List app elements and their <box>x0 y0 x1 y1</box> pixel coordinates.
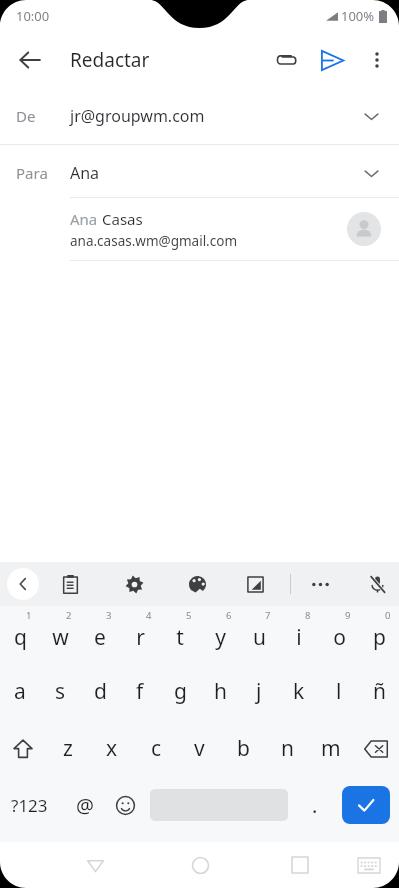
button[interactable]: n <box>265 720 309 777</box>
button[interactable]: Home <box>180 845 220 885</box>
button[interactable]: g <box>160 663 200 720</box>
button[interactable]: z <box>46 720 90 777</box>
staticText: 1 <box>26 609 32 622</box>
staticText: n <box>281 734 294 763</box>
staticText: p <box>373 623 386 652</box>
button[interactable]: Recent apps <box>280 845 320 885</box>
staticText: l <box>336 677 342 706</box>
button[interactable]: Settings <box>116 566 152 602</box>
staticText: Casas <box>102 209 143 229</box>
button[interactable]: Themes <box>179 566 215 602</box>
button[interactable]: h <box>200 663 240 720</box>
button[interactable]: 7 <box>239 606 279 663</box>
staticText: De <box>16 106 36 126</box>
button[interactable]: 0 <box>359 606 399 663</box>
staticText: c <box>151 734 162 763</box>
button[interactable]: Attach file <box>263 37 309 83</box>
staticText: w <box>52 623 69 652</box>
button[interactable]: More <box>302 566 338 602</box>
button[interactable]: f <box>120 663 160 720</box>
button[interactable]: Keyboard <box>349 845 389 885</box>
staticText: x <box>106 734 118 763</box>
staticText: s <box>55 677 66 706</box>
button[interactable]: 6 <box>200 606 240 663</box>
button[interactable]: j <box>239 663 279 720</box>
button[interactable]: c <box>134 720 178 777</box>
staticText: jr@groupwm.com <box>70 105 205 127</box>
button[interactable]: a <box>0 663 40 720</box>
button[interactable]: 8 <box>279 606 319 663</box>
staticText: u <box>253 623 266 652</box>
staticText: h <box>214 677 227 706</box>
button[interactable]: More options <box>355 38 399 82</box>
button[interactable]: 9 <box>319 606 359 663</box>
staticText: o <box>333 623 346 652</box>
button[interactable]: Emoji <box>104 777 146 834</box>
button[interactable]: v <box>177 720 221 777</box>
button[interactable]: Back <box>6 36 54 84</box>
staticText: 5 <box>186 609 192 622</box>
staticText: z <box>63 734 73 763</box>
button[interactable]: 1 <box>0 606 40 663</box>
button[interactable]: ñ <box>359 663 399 720</box>
button[interactable]: d <box>80 663 120 720</box>
staticText: Ana <box>70 209 102 229</box>
staticText: 100% <box>341 7 375 25</box>
staticText: j <box>256 677 262 706</box>
staticText: 9 <box>345 609 351 622</box>
button[interactable]: Shift <box>0 720 46 777</box>
staticText: ana.casas.wm@gmail.com <box>70 232 238 250</box>
staticText: Redactar <box>70 47 150 73</box>
staticText: m <box>321 734 341 763</box>
button[interactable]: Expand toolbar <box>7 568 39 600</box>
button[interactable]: s <box>40 663 80 720</box>
button[interactable]: 2 <box>40 606 80 663</box>
staticText: a <box>14 677 26 706</box>
staticText: d <box>94 677 107 706</box>
button[interactable]: Send <box>309 37 355 83</box>
staticText: ñ <box>373 677 386 706</box>
button[interactable]: m <box>309 720 353 777</box>
staticText: y <box>215 623 226 652</box>
button[interactable]: . <box>295 777 335 834</box>
button[interactable]: b <box>221 720 265 777</box>
button[interactable]: Microphone off <box>359 566 395 602</box>
staticText: Ana <box>70 162 100 184</box>
button[interactable]: Clipboard <box>52 566 88 602</box>
button[interactable]: Backspace <box>353 720 399 777</box>
button[interactable]: Enter <box>342 786 390 824</box>
staticText: t <box>176 623 184 652</box>
button[interactable]: ?123 <box>0 777 58 834</box>
staticText: f <box>136 677 144 706</box>
button[interactable]: x <box>90 720 134 777</box>
button[interactable]: De <box>0 88 399 144</box>
staticText: Para <box>16 163 48 183</box>
button[interactable]: Back <box>75 845 115 885</box>
button[interactable]: k <box>279 663 319 720</box>
staticText: 0 <box>385 609 391 622</box>
button[interactable]: @ <box>62 777 108 834</box>
button[interactable]: 3 <box>80 606 120 663</box>
staticText: b <box>237 734 250 763</box>
staticText: e <box>94 623 106 652</box>
staticText: 4 <box>146 609 152 622</box>
staticText: k <box>293 677 305 706</box>
staticText: i <box>296 623 302 652</box>
staticText: 6 <box>226 609 232 622</box>
staticText: r <box>136 623 145 652</box>
staticText: 10:00 <box>16 7 50 25</box>
button[interactable]: Para <box>0 145 399 201</box>
staticText: 7 <box>265 609 271 622</box>
staticText: 2 <box>66 609 72 622</box>
button[interactable]: 4 <box>120 606 160 663</box>
button[interactable]: Resize keyboard <box>237 566 273 602</box>
button[interactable]: 5 <box>160 606 200 663</box>
staticText: ?123 <box>11 794 48 817</box>
staticText: g <box>174 677 187 706</box>
staticText: 3 <box>106 609 112 622</box>
staticText: q <box>14 623 27 652</box>
button[interactable]: Ana <box>0 198 399 260</box>
button[interactable]: l <box>319 663 359 720</box>
staticText: . <box>312 792 318 819</box>
